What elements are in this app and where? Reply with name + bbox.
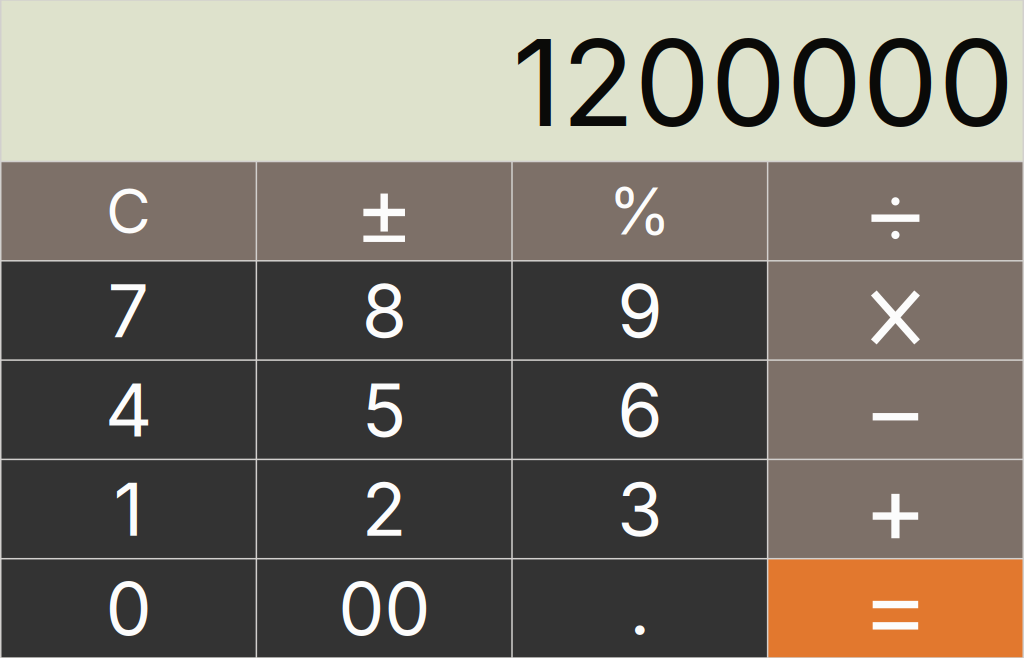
staticText: 6 (617, 365, 662, 454)
button[interactable]: 4 (1, 361, 256, 459)
staticText: 00 (338, 564, 430, 653)
staticText: 5 (362, 365, 407, 454)
button[interactable]: 2 (257, 460, 511, 558)
button[interactable]: C (1, 162, 256, 260)
button[interactable]: Plus or minus (257, 162, 511, 260)
button[interactable]: % (513, 162, 767, 260)
button[interactable]: 9 (513, 262, 767, 359)
button[interactable]: 5 (257, 361, 511, 459)
staticText: 1 (114, 465, 144, 553)
button[interactable]: . (513, 559, 767, 657)
button[interactable]: Equals (768, 559, 1022, 657)
button[interactable]: Subtract (768, 361, 1022, 459)
staticText: C (106, 174, 151, 248)
staticText: 0 (106, 564, 152, 653)
staticText: 8 (362, 266, 407, 355)
button[interactable]: 3 (513, 460, 767, 558)
button[interactable]: Divide (768, 162, 1022, 260)
button[interactable]: Add (768, 460, 1022, 558)
staticText: 4 (105, 365, 152, 454)
button[interactable]: 8 (257, 262, 511, 359)
button[interactable]: Multiply (768, 262, 1022, 359)
button[interactable]: 7 (1, 262, 256, 359)
button[interactable]: 0 (1, 559, 256, 657)
staticText: 2 (362, 465, 407, 553)
staticText: 3 (617, 465, 662, 553)
staticText: 9 (617, 266, 662, 355)
staticText: 7 (108, 266, 150, 355)
staticText: 1200000 (512, 10, 1014, 155)
staticText: . (629, 564, 650, 653)
button[interactable]: 00 (257, 559, 511, 657)
button[interactable]: 1 (1, 460, 256, 558)
button[interactable]: 6 (513, 361, 767, 459)
staticText: % (608, 172, 671, 250)
